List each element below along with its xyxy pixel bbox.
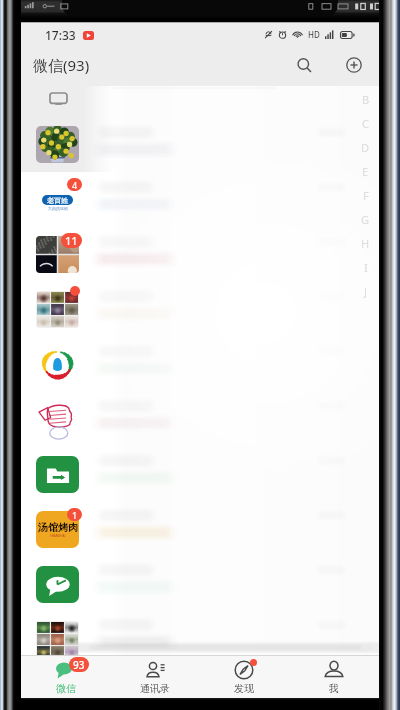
staticText: HD xyxy=(308,29,320,40)
staticText: 4 xyxy=(72,179,78,191)
button[interactable] xyxy=(21,117,379,172)
button[interactable]: 我 xyxy=(289,656,379,698)
staticText: 1 xyxy=(72,509,78,521)
staticText: 发现 xyxy=(234,682,254,695)
staticText: 微信 xyxy=(56,682,76,695)
staticText: 17:33 xyxy=(45,27,76,43)
staticText: C xyxy=(362,116,369,131)
staticText: 汤馆烤肉 xyxy=(38,521,78,534)
staticText: G xyxy=(361,212,370,227)
button[interactable]: 老百姓 xyxy=(21,172,379,227)
button[interactable]: Search xyxy=(291,52,317,78)
staticText: H xyxy=(361,236,370,251)
button[interactable]: Add xyxy=(341,52,367,78)
button[interactable]: 11 xyxy=(21,227,379,282)
button[interactable]: 通讯录 xyxy=(110,656,199,698)
button[interactable] xyxy=(21,557,379,612)
staticText: D xyxy=(361,140,370,155)
staticText: 大药房连锁 xyxy=(48,206,68,211)
staticText: B xyxy=(362,92,370,107)
button[interactable]: 发现 xyxy=(199,656,289,698)
staticText: 11 xyxy=(65,233,78,248)
button[interactable] xyxy=(21,337,379,392)
staticText: I xyxy=(364,260,368,275)
staticText: F xyxy=(363,188,369,203)
staticText: 微信(93) xyxy=(33,55,90,75)
staticText: 通讯录 xyxy=(140,682,170,695)
button[interactable]: 93 xyxy=(21,656,110,698)
button[interactable] xyxy=(21,392,379,447)
staticText: 93 xyxy=(73,658,85,672)
staticText: 我 xyxy=(329,682,339,695)
staticText: E xyxy=(362,164,369,179)
button[interactable]: 汤馆烤肉 xyxy=(21,502,379,557)
staticText: 老百姓 xyxy=(47,196,68,205)
button[interactable] xyxy=(21,447,379,502)
staticText: J xyxy=(364,284,368,299)
button[interactable] xyxy=(21,282,379,337)
staticText: SHANGHAI xyxy=(50,534,66,538)
button[interactable] xyxy=(21,612,379,655)
